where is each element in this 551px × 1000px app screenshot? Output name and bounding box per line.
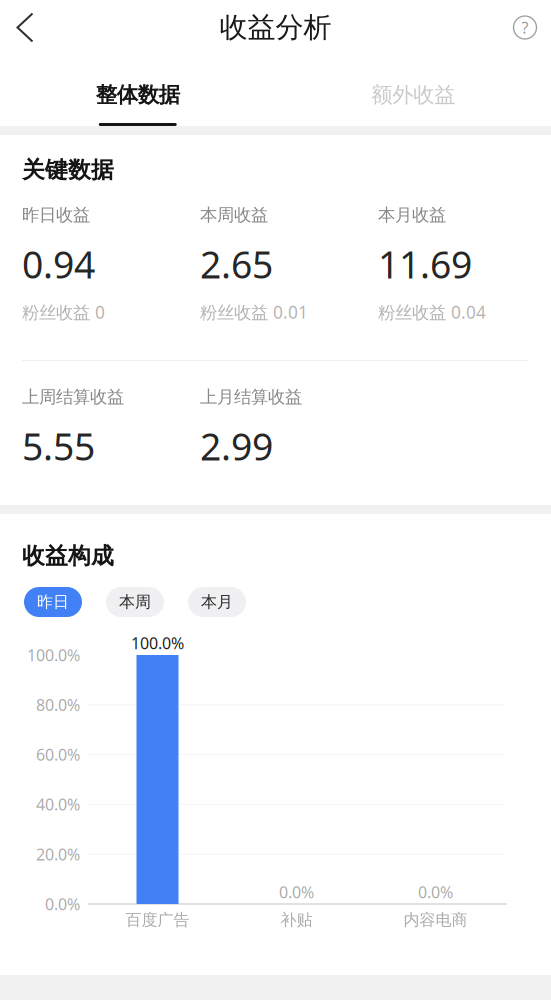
staticText: 粉丝收益 0.04 (378, 300, 486, 323)
staticText: 额外收益 (371, 82, 455, 108)
button[interactable]: 额外收益 (275, 55, 551, 126)
staticText: 2.99 (200, 421, 273, 471)
staticText: 昨日 (37, 592, 69, 612)
staticText: 2.65 (200, 239, 273, 289)
staticText: 0.0% (45, 893, 80, 915)
staticText: 收益分析 (219, 10, 331, 45)
staticText: 昨日收益 (22, 204, 90, 226)
button[interactable]: 昨日 (24, 587, 82, 617)
staticText: 100.0% (27, 644, 80, 666)
staticText: 上周结算收益 (22, 386, 124, 408)
staticText: 本月收益 (378, 204, 446, 226)
button[interactable]: 本周 (106, 587, 164, 617)
button[interactable]: 帮助 (501, 0, 549, 54)
staticText: 本月 (201, 592, 233, 612)
staticText: 上月结算收益 (200, 386, 302, 408)
staticText: 0.0% (279, 881, 314, 903)
staticText: 收益构成 (22, 542, 114, 570)
button[interactable]: 本月 (188, 587, 246, 617)
button[interactable]: 整体数据 (0, 55, 275, 126)
staticText: 百度广告 (125, 910, 189, 930)
staticText: 20.0% (36, 844, 80, 865)
staticText: 100.0% (131, 632, 184, 654)
staticText: 补贴 (280, 910, 312, 930)
button[interactable]: 返回 (1, 0, 49, 54)
staticText: 80.0% (36, 694, 80, 715)
staticText: 关键数据 (22, 156, 114, 184)
staticText: 粉丝收益 0 (22, 300, 105, 323)
staticText: 0.94 (22, 239, 95, 289)
staticText: 60.0% (36, 744, 80, 765)
staticText: 粉丝收益 0.01 (200, 300, 308, 323)
staticText: 整体数据 (96, 82, 180, 108)
staticText: 本周 (119, 592, 151, 612)
staticText: 5.55 (22, 421, 95, 471)
staticText: 0.0% (418, 881, 453, 903)
staticText: 40.0% (36, 794, 80, 815)
staticText: 内容电商 (403, 910, 467, 930)
staticText: 本周收益 (200, 204, 268, 226)
staticText: ? (521, 17, 528, 38)
staticText: 11.69 (378, 239, 472, 289)
